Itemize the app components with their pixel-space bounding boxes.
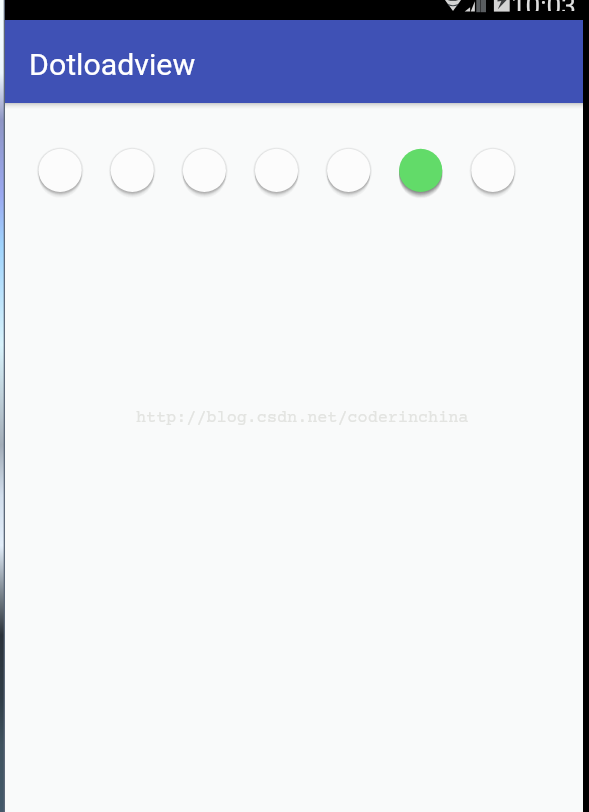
button[interactable]: Dotloadview <box>5 20 583 103</box>
staticText: 10:03 <box>511 0 576 11</box>
staticText: http://blog.csdn.net/coderinchina <box>136 409 469 428</box>
staticText: Dotloadview <box>29 47 196 83</box>
